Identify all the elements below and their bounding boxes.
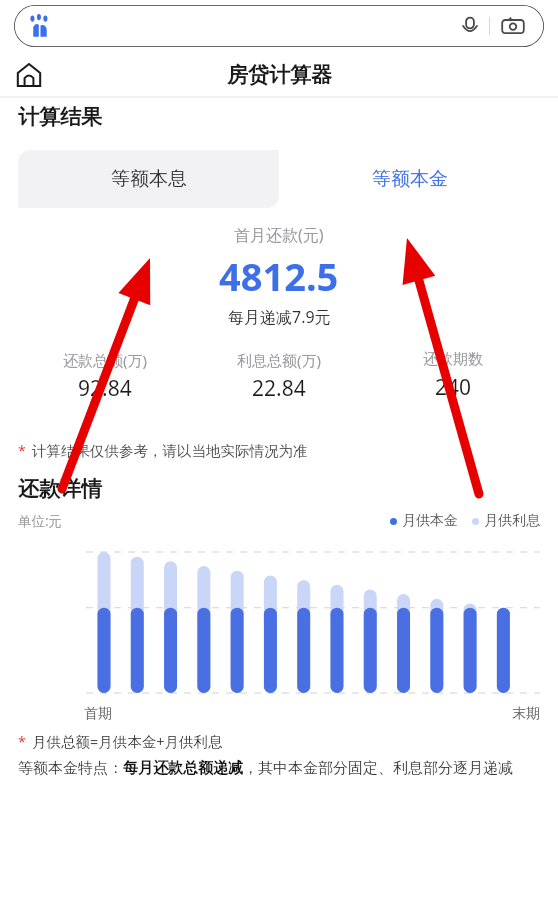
staticText: 首期	[84, 705, 112, 723]
staticText: 等额本息	[111, 167, 187, 191]
staticText: 计算结果仅供参考，请以当地实际情况为准	[32, 442, 308, 460]
button[interactable]: Voice search	[14, 5, 544, 47]
button[interactable]: 等额本息	[18, 150, 279, 208]
staticText: 每月递减7.9元	[228, 306, 331, 328]
staticText: 月供利息	[484, 512, 540, 530]
staticText: 还款期数	[423, 350, 483, 369]
button[interactable]: Camera search	[498, 11, 528, 41]
staticText: 等额本金特点：每月还款总额递减，其中本金部分固定、利息部分逐月递减	[18, 759, 513, 778]
staticText: 末期	[512, 705, 540, 723]
staticText: 月供总额=月供本金+月供利息	[32, 731, 223, 751]
staticText: 利息总额(万)	[237, 350, 322, 370]
staticText: 240	[435, 373, 472, 402]
staticText: 还款详情	[18, 476, 102, 502]
button[interactable]: Home	[12, 58, 46, 92]
staticText: 92.84	[78, 374, 132, 403]
staticText: 4812.5	[219, 250, 339, 302]
staticText: 房贷计算器	[227, 62, 332, 88]
staticText: 22.84	[252, 374, 306, 403]
staticText: *	[18, 732, 26, 751]
button[interactable]: Voice search	[455, 11, 485, 41]
staticText: 还款总额(万)	[63, 350, 148, 370]
staticText: 首月还款(元)	[234, 224, 324, 246]
staticText: 月供本金	[402, 512, 458, 530]
staticText: 计算结果	[18, 104, 102, 130]
staticText: 单位:元	[18, 512, 63, 530]
staticText: 等额本金	[372, 167, 448, 191]
staticText: *	[18, 441, 26, 460]
button[interactable]: 等额本金	[279, 150, 540, 208]
